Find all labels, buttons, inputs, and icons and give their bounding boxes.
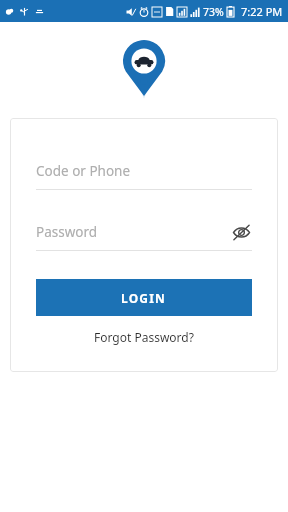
staticText: 73% <box>203 5 224 19</box>
staticText: Forgot Password? <box>94 329 194 345</box>
staticText: 7:22 PM <box>241 4 283 19</box>
button[interactable]: LOGIN <box>36 279 252 316</box>
button[interactable]: Password <box>36 221 252 243</box>
button[interactable]: Show password <box>230 221 252 243</box>
staticText: Password <box>36 223 230 241</box>
button[interactable]: Code or Phone <box>36 160 252 182</box>
staticText: Code or Phone <box>36 162 252 180</box>
staticText: LOGIN <box>121 290 167 306</box>
button[interactable]: Forgot Password? <box>88 327 200 347</box>
